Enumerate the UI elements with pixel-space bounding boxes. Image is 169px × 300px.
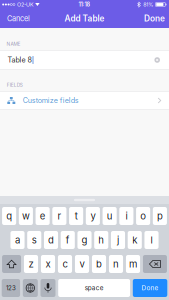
staticText: a (15, 234, 20, 246)
staticText: u (107, 210, 113, 222)
staticText: j (117, 234, 119, 246)
button[interactable]: Done (133, 279, 167, 297)
button[interactable]: t (69, 207, 83, 225)
staticText: y (90, 210, 95, 222)
staticText: r (57, 210, 61, 222)
staticText: i (125, 210, 127, 222)
button[interactable]: f (61, 231, 75, 249)
staticText: b (96, 258, 102, 270)
button[interactable]: q (2, 207, 16, 225)
staticText: s (32, 234, 37, 246)
staticText: t (75, 210, 78, 222)
staticText: Add Table (64, 13, 104, 23)
button[interactable]: j (111, 231, 125, 249)
button[interactable]: l (144, 231, 159, 249)
button[interactable]: x (41, 255, 55, 273)
button[interactable]: Next keyboard (23, 279, 38, 297)
staticText: x (45, 258, 50, 270)
button[interactable]: d (44, 231, 58, 249)
staticText: h (98, 234, 104, 246)
button[interactable]: Delete (143, 255, 167, 273)
staticText: Done (144, 13, 165, 23)
button[interactable]: g (77, 231, 92, 249)
button[interactable]: e (36, 207, 50, 225)
staticText: NAME (6, 41, 20, 47)
button[interactable]: y (86, 207, 100, 225)
staticText: space (85, 284, 104, 292)
button[interactable]: z (24, 255, 38, 273)
staticText: z (28, 258, 33, 270)
button[interactable]: 123 (2, 279, 20, 297)
staticText: v (79, 258, 84, 270)
staticText: w (22, 210, 30, 222)
button[interactable]: p (153, 207, 167, 225)
staticText: O2-UK (15, 1, 34, 8)
button[interactable]: v (75, 255, 89, 273)
button[interactable]: u (103, 207, 117, 225)
staticText: p (157, 210, 163, 222)
button[interactable]: Dictation (40, 279, 55, 297)
button[interactable]: s (27, 231, 41, 249)
button[interactable]: Customize fields (0, 91, 169, 110)
button[interactable]: m (126, 255, 140, 273)
button[interactable]: Cancel (0, 9, 35, 28)
staticText: Customize fields (23, 96, 79, 105)
button[interactable]: h (94, 231, 108, 249)
staticText: f (66, 234, 70, 246)
staticText: o (140, 210, 146, 222)
staticText: 81% (143, 1, 153, 8)
staticText: Table 8 (8, 56, 32, 64)
staticText: l (150, 234, 152, 246)
button[interactable]: c (58, 255, 72, 273)
button[interactable]: r (52, 207, 66, 225)
staticText: e (40, 210, 46, 222)
staticText: d (48, 234, 54, 246)
button[interactable]: i (119, 207, 133, 225)
staticText: q (6, 210, 12, 222)
button[interactable]: a (10, 231, 25, 249)
staticText: 123 (6, 284, 16, 292)
staticText: c (62, 258, 67, 270)
button[interactable]: Shift (2, 255, 21, 273)
staticText: 11:18 (78, 1, 90, 8)
button[interactable]: Done (139, 9, 169, 28)
staticText: k (132, 234, 137, 246)
button[interactable]: n (109, 255, 123, 273)
staticText: n (113, 258, 119, 270)
button[interactable]: space (58, 279, 130, 297)
staticText: Cancel (7, 14, 30, 23)
staticText: Done (142, 284, 159, 292)
staticText: FIELDS (7, 82, 23, 88)
staticText: g (81, 234, 87, 246)
button[interactable]: Clear text (153, 55, 162, 64)
button[interactable]: w (19, 207, 33, 225)
button[interactable]: b (92, 255, 106, 273)
button[interactable]: k (128, 231, 142, 249)
button[interactable]: o (136, 207, 150, 225)
staticText: m (129, 258, 137, 270)
